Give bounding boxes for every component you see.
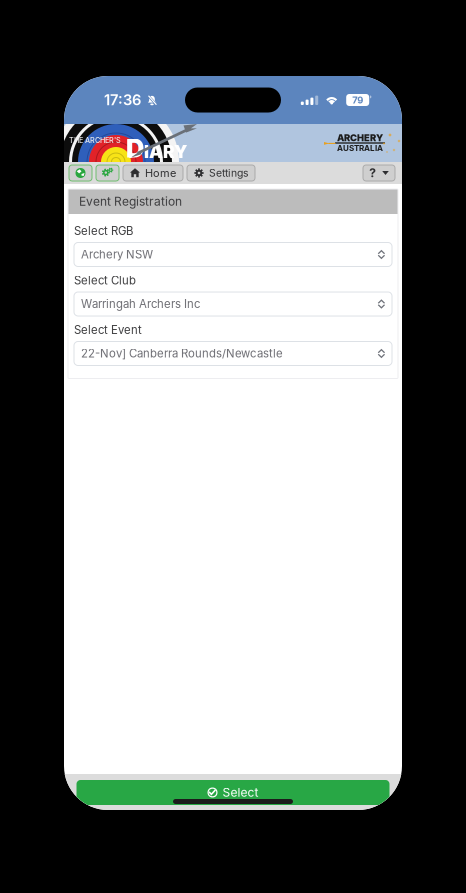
staticText: Select bbox=[222, 785, 258, 800]
button[interactable]: Help bbox=[363, 165, 395, 181]
staticText: 79 bbox=[352, 94, 363, 106]
staticText: 22-Nov] Canberra Rounds/Newcastle bbox=[81, 347, 283, 360]
staticText: AUSTRALIA bbox=[337, 143, 383, 153]
button[interactable]: 22-Nov] Canberra Rounds/Newcastle bbox=[74, 341, 392, 365]
button[interactable]: Select bbox=[76, 780, 389, 805]
staticText: THE ARCHER'S bbox=[69, 136, 121, 145]
staticText: Event Registration bbox=[79, 194, 182, 209]
button[interactable]: Language bbox=[69, 165, 92, 181]
staticText: IARY bbox=[144, 141, 187, 162]
button[interactable]: Settings bbox=[187, 165, 255, 181]
staticText: ARCHERY bbox=[337, 132, 383, 143]
staticText: Archery NSW bbox=[81, 248, 153, 261]
staticText: 17:36 bbox=[104, 91, 141, 109]
staticText: Settings bbox=[209, 167, 248, 179]
staticText: D bbox=[126, 133, 144, 164]
staticText: Select Club bbox=[74, 274, 136, 287]
staticText: Warringah Archers Inc bbox=[81, 297, 200, 311]
button[interactable]: Home bbox=[123, 165, 183, 181]
button[interactable]: Archery NSW bbox=[74, 242, 392, 266]
staticText: Select RGB bbox=[74, 224, 133, 238]
button[interactable]: Preferences bbox=[96, 165, 119, 181]
staticText: Select Event bbox=[74, 323, 142, 337]
button[interactable]: Warringah Archers Inc bbox=[74, 292, 392, 316]
staticText: Home bbox=[145, 166, 176, 180]
staticText: ? bbox=[369, 166, 376, 180]
